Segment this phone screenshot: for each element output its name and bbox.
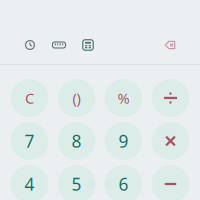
staticText: 9 bbox=[118, 129, 128, 152]
staticText: 5 bbox=[71, 172, 81, 195]
button[interactable]: 4 bbox=[10, 165, 48, 200]
staticText: C bbox=[25, 88, 34, 108]
button[interactable]: Multiply bbox=[151, 122, 189, 160]
button[interactable]: Converter bbox=[47, 34, 71, 56]
button[interactable]: Divide bbox=[151, 79, 189, 117]
button[interactable]: () bbox=[57, 79, 95, 117]
button[interactable]: Minus bbox=[151, 165, 189, 200]
staticText: % bbox=[117, 88, 129, 108]
staticText: 8 bbox=[71, 129, 81, 152]
button[interactable]: 9 bbox=[104, 122, 142, 160]
button[interactable]: Calculator bbox=[76, 34, 100, 56]
button[interactable]: 6 bbox=[104, 165, 142, 200]
button[interactable]: C bbox=[10, 79, 48, 117]
button[interactable]: History bbox=[18, 34, 42, 56]
button[interactable]: Delete bbox=[158, 34, 182, 56]
staticText: () bbox=[72, 88, 80, 108]
staticText: 6 bbox=[118, 172, 128, 195]
staticText: 4 bbox=[24, 172, 34, 195]
staticText: 7 bbox=[24, 129, 34, 152]
button[interactable]: % bbox=[104, 79, 142, 117]
button[interactable]: 8 bbox=[57, 122, 95, 160]
button[interactable]: 7 bbox=[10, 122, 48, 160]
button[interactable]: 5 bbox=[57, 165, 95, 200]
